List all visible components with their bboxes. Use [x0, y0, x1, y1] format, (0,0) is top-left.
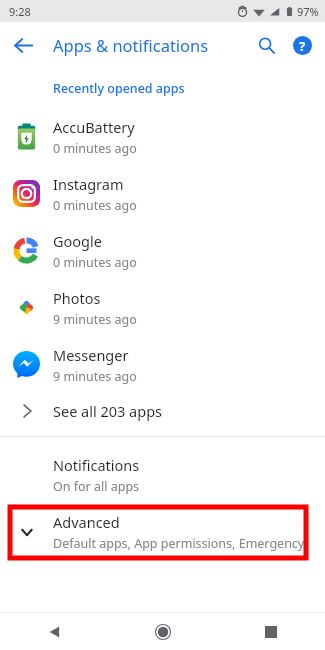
staticText: AccuBattery: [53, 117, 135, 137]
button[interactable]: Search: [249, 28, 283, 62]
staticText: Default apps, App permissions, Emergency…: [53, 535, 325, 552]
button[interactable]: Instagram: [0, 165, 325, 222]
staticText: Apps & notifications: [53, 34, 209, 56]
staticText: 9 minutes ago: [53, 311, 137, 328]
button[interactable]: AccuBattery: [0, 108, 325, 165]
staticText: Photos: [53, 288, 101, 308]
staticText: ?: [299, 37, 306, 55]
button[interactable]: Help: [285, 28, 319, 62]
staticText: Notifications: [53, 455, 140, 475]
button[interactable]: Photos: [0, 279, 325, 336]
button[interactable]: Back: [0, 613, 109, 650]
staticText: Google: [53, 231, 102, 251]
staticText: 0 minutes ago: [53, 140, 137, 157]
button[interactable]: Messenger: [0, 336, 325, 393]
button[interactable]: Home: [109, 613, 217, 650]
staticText: On for all apps: [53, 478, 140, 495]
staticText: Instagram: [53, 174, 124, 194]
staticText: Recently opened apps: [53, 80, 185, 97]
staticText: 0 minutes ago: [53, 254, 137, 271]
staticText: 9 minutes ago: [53, 368, 137, 385]
staticText: See all 203 apps: [53, 401, 163, 421]
button[interactable]: Notifications: [0, 454, 325, 496]
button[interactable]: Google: [0, 222, 325, 279]
staticText: 9:28: [9, 4, 31, 19]
staticText: 97%: [297, 4, 319, 19]
staticText: Messenger: [53, 345, 129, 365]
button[interactable]: Advanced: [0, 506, 325, 558]
button[interactable]: See all 203 apps: [0, 393, 325, 429]
staticText: Advanced: [53, 512, 120, 532]
button[interactable]: Navigate up: [7, 29, 39, 61]
staticText: 0 minutes ago: [53, 197, 137, 214]
button[interactable]: Recent apps: [217, 613, 325, 650]
